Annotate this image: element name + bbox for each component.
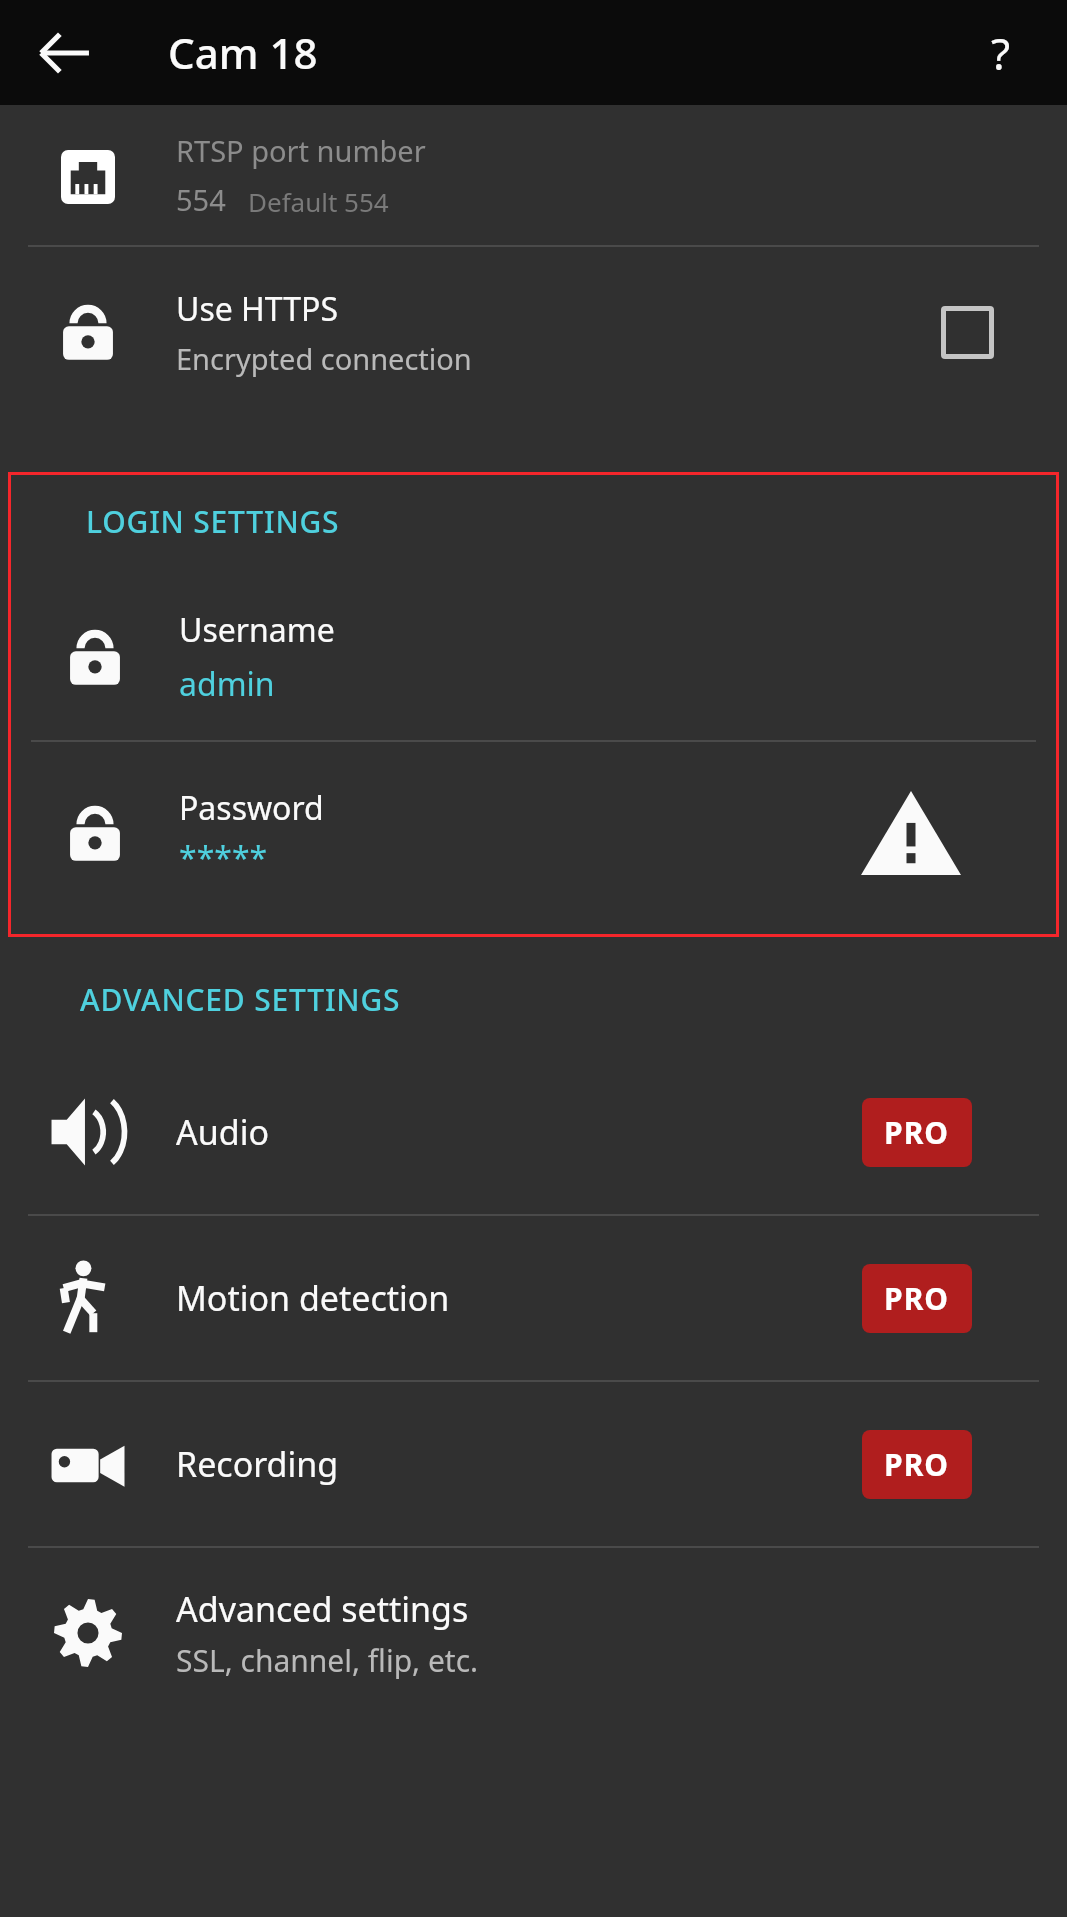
staticText: Cam 18 bbox=[168, 24, 318, 81]
button[interactable]: Use HTTPS checkbox bbox=[937, 302, 997, 362]
staticText: PRO bbox=[884, 1444, 950, 1485]
button[interactable]: Motion detection bbox=[0, 1216, 1067, 1380]
staticText: Default 554 bbox=[248, 184, 389, 219]
button[interactable]: Help bbox=[959, 11, 1043, 95]
staticText: ***** bbox=[179, 836, 268, 880]
staticText: 554 bbox=[176, 180, 226, 219]
staticText: Username bbox=[179, 608, 335, 652]
button[interactable]: Recording bbox=[0, 1382, 1067, 1546]
button[interactable]: Username bbox=[11, 574, 1056, 740]
button[interactable]: Back bbox=[22, 11, 106, 95]
button[interactable]: PRO bbox=[862, 1098, 972, 1167]
staticText: PRO bbox=[884, 1112, 950, 1153]
staticText: ADVANCED SETTINGS bbox=[80, 979, 401, 1020]
button[interactable]: Audio bbox=[0, 1050, 1067, 1214]
staticText: Use HTTPS bbox=[176, 287, 338, 331]
button[interactable]: PRO bbox=[862, 1430, 972, 1499]
staticText: PRO bbox=[884, 1278, 950, 1319]
staticText: SSL, channel, flip, etc. bbox=[176, 1640, 479, 1681]
button[interactable]: Warning bbox=[861, 783, 961, 883]
staticText: Advanced settings bbox=[176, 1586, 469, 1632]
button[interactable]: PRO bbox=[862, 1264, 972, 1333]
button[interactable]: Password bbox=[11, 742, 1056, 924]
button[interactable]: RTSP port number bbox=[0, 105, 1067, 245]
staticText: Password bbox=[179, 786, 324, 830]
staticText: ? bbox=[991, 23, 1011, 83]
staticText: Encrypted connection bbox=[176, 339, 472, 378]
staticText: Recording bbox=[176, 1441, 862, 1487]
button[interactable]: Advanced settings bbox=[0, 1548, 1067, 1718]
staticText: Audio bbox=[176, 1109, 862, 1155]
button[interactable]: Use HTTPS bbox=[0, 247, 1067, 417]
staticText: LOGIN SETTINGS bbox=[86, 501, 340, 542]
staticText: RTSP port number bbox=[176, 131, 426, 170]
staticText: Motion detection bbox=[176, 1275, 862, 1321]
staticText: admin bbox=[179, 662, 275, 706]
